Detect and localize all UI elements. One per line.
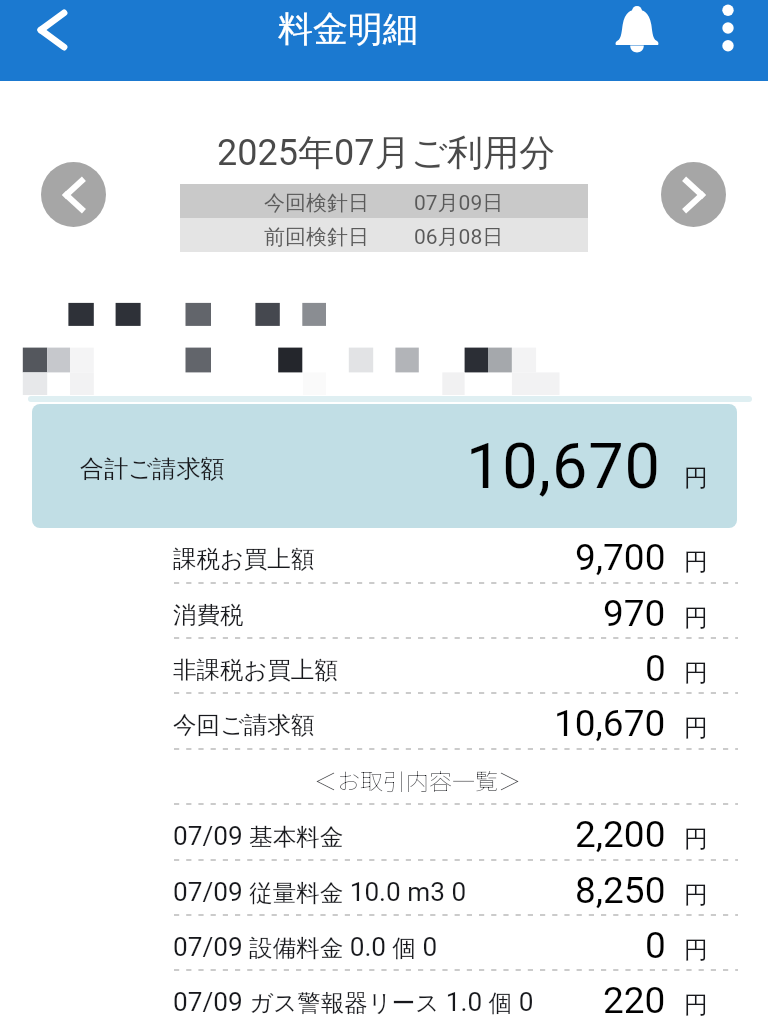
staticText: 2025年07月ご利用分 <box>217 130 556 175</box>
staticText: 消費税 <box>173 600 244 630</box>
staticText: 課税お買上額 <box>173 544 315 574</box>
button[interactable]: 消費税 <box>174 583 738 638</box>
button[interactable]: 07/09 設備料金 0.0 個 0 <box>174 915 738 970</box>
button[interactable]: More options <box>691 0 764 64</box>
button[interactable]: 課税お買上額 <box>174 527 738 582</box>
staticText: 円 <box>684 935 708 965</box>
staticText: 220 <box>603 979 666 1022</box>
staticText: 円 <box>684 603 708 633</box>
staticText: 料金明細 <box>278 7 418 51</box>
button[interactable]: Previous month <box>41 162 106 227</box>
staticText: 円 <box>684 880 708 910</box>
staticText: 9,700 <box>575 536 666 579</box>
staticText: 06月08日 <box>414 224 504 250</box>
staticText: 2,200 <box>575 813 666 856</box>
staticText: 非課税お買上額 <box>173 655 339 685</box>
button[interactable]: 07/09 基本料金 <box>174 804 738 859</box>
staticText: 07月09日 <box>414 190 504 216</box>
staticText: 今回検針日 <box>264 190 369 216</box>
button[interactable]: 今回ご請求額 <box>174 693 738 748</box>
staticText: 円 <box>684 990 708 1020</box>
staticText: 970 <box>603 592 666 635</box>
staticText: 10,670 <box>554 702 666 745</box>
staticText: 0 <box>645 924 666 967</box>
staticText: 円 <box>684 547 708 577</box>
staticText: 今回ご請求額 <box>173 710 315 740</box>
staticText: 8,250 <box>575 869 666 912</box>
staticText: 07/09 従量料金 10.0 m3 0 <box>173 877 467 908</box>
button[interactable]: 07/09 ガス警報器リース 1.0 個 0 <box>174 970 738 1024</box>
staticText: 円 <box>684 713 708 743</box>
button[interactable]: Next month <box>661 162 726 227</box>
staticText: 円 <box>684 658 708 688</box>
staticText: 07/09 設備料金 0.0 個 0 <box>173 932 438 963</box>
staticText: 円 <box>684 824 708 854</box>
staticText: 07/09 ガス警報器リース 1.0 個 0 <box>173 987 534 1018</box>
staticText: 前回検針日 <box>264 224 369 250</box>
button[interactable]: Back <box>15 0 88 66</box>
staticText: 円 <box>684 463 708 493</box>
staticText: 0 <box>645 647 666 690</box>
button[interactable]: 非課税お買上額 <box>174 638 738 693</box>
staticText: 07/09 基本料金 <box>173 821 344 852</box>
staticText: 10,670 <box>466 430 661 504</box>
staticText: 合計ご請求額 <box>80 454 225 484</box>
staticText: ＜お取引内容一覧＞ <box>314 763 521 796</box>
button[interactable]: 07/09 従量料金 10.0 m3 0 <box>174 860 738 915</box>
button[interactable]: Notifications <box>600 0 673 65</box>
